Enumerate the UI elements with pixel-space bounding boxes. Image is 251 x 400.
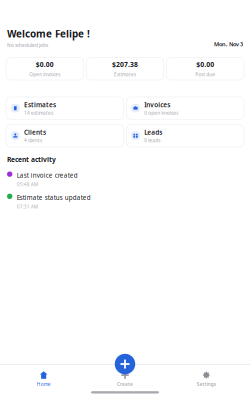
staticText: Welcome Felipe !: [7, 27, 90, 40]
staticText: Past due: [195, 71, 215, 78]
button[interactable]: Home: [3, 371, 84, 387]
button[interactable]: Leads: [126, 124, 244, 147]
staticText: Estimates: [114, 71, 136, 78]
button[interactable]: Create: [84, 371, 166, 387]
staticText: 0 leads: [144, 137, 160, 144]
staticText: Recent activity: [7, 155, 56, 164]
button[interactable]: Estimates: [6, 97, 124, 119]
staticText: 05:48 AM: [17, 181, 38, 188]
staticText: 14 estimates: [24, 110, 53, 116]
staticText: 4 clients: [24, 137, 42, 144]
button[interactable]: Clients: [6, 124, 124, 147]
staticText: $207.38: [112, 60, 138, 69]
staticText: 0 open invoices: [144, 110, 178, 116]
staticText: Leads: [144, 128, 162, 137]
staticText: Estimate status updated: [17, 193, 91, 202]
staticText: 07:31 AM: [17, 203, 38, 210]
staticText: Last invoice created: [17, 171, 78, 180]
button[interactable]: Invoices: [126, 97, 244, 119]
staticText: $0.00: [196, 60, 214, 69]
staticText: Open invoices: [29, 71, 60, 78]
button[interactable]: Settings: [166, 371, 247, 387]
staticText: Mon, Nov 3: [214, 40, 243, 48]
staticText: No scheduled jobs: [7, 42, 48, 48]
button[interactable]: Create: [115, 354, 135, 374]
staticText: Settings: [197, 381, 216, 387]
staticText: Estimates: [24, 100, 56, 109]
staticText: Create: [117, 381, 133, 387]
staticText: Invoices: [144, 100, 170, 109]
staticText: Clients: [24, 128, 46, 137]
staticText: Home: [37, 381, 51, 387]
staticText: $0.00: [36, 60, 54, 69]
